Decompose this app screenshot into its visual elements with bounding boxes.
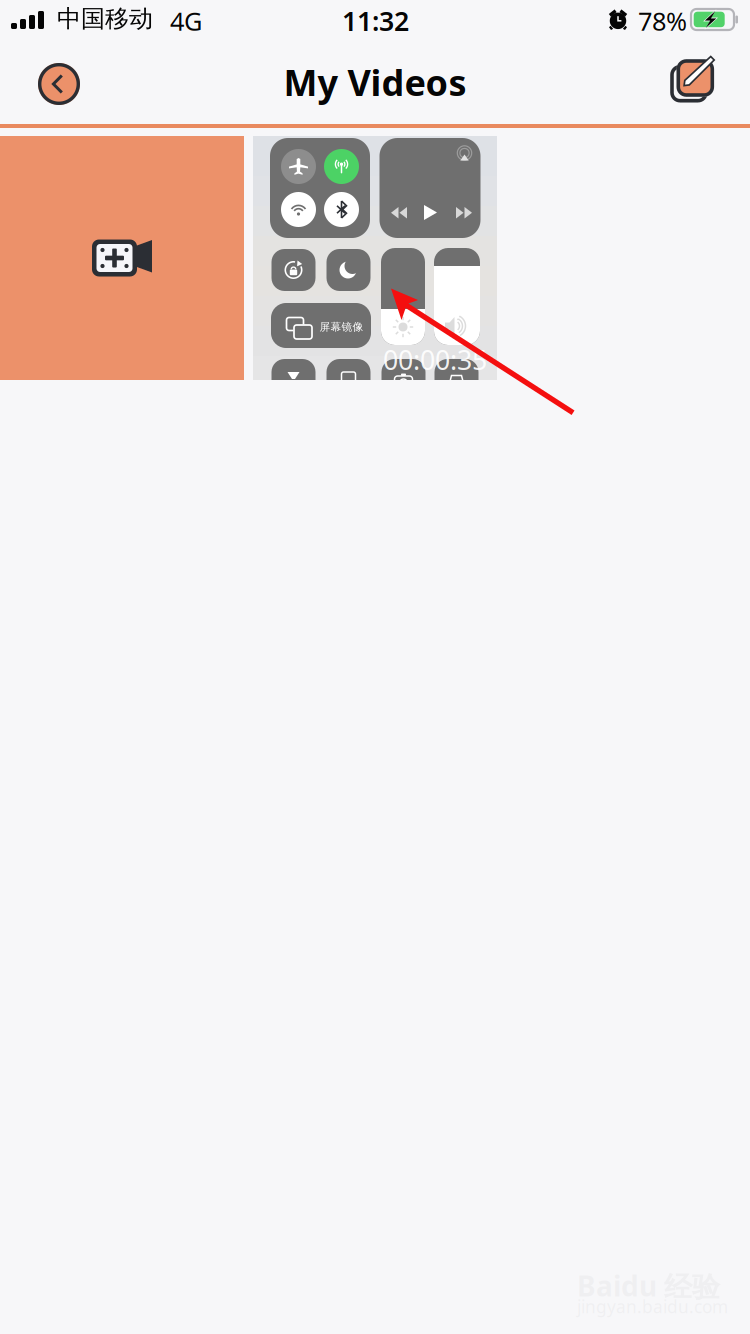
staticText: 00:00:35 — [383, 342, 487, 377]
staticText: 11:32 — [342, 3, 409, 38]
button[interactable]: Video: screen recording — [253, 136, 497, 380]
staticText: 屏幕镜像 — [319, 320, 363, 334]
staticText: Baidu 经验 — [577, 1267, 720, 1304]
staticText: 4G — [170, 4, 202, 38]
staticText: My Videos — [283, 58, 466, 106]
staticText: 78% — [638, 4, 687, 38]
button[interactable]: Back — [17, 46, 101, 122]
staticText: 中国移动 — [57, 4, 153, 33]
button[interactable]: Record a new video — [0, 136, 244, 380]
button[interactable]: Compose — [655, 44, 735, 120]
